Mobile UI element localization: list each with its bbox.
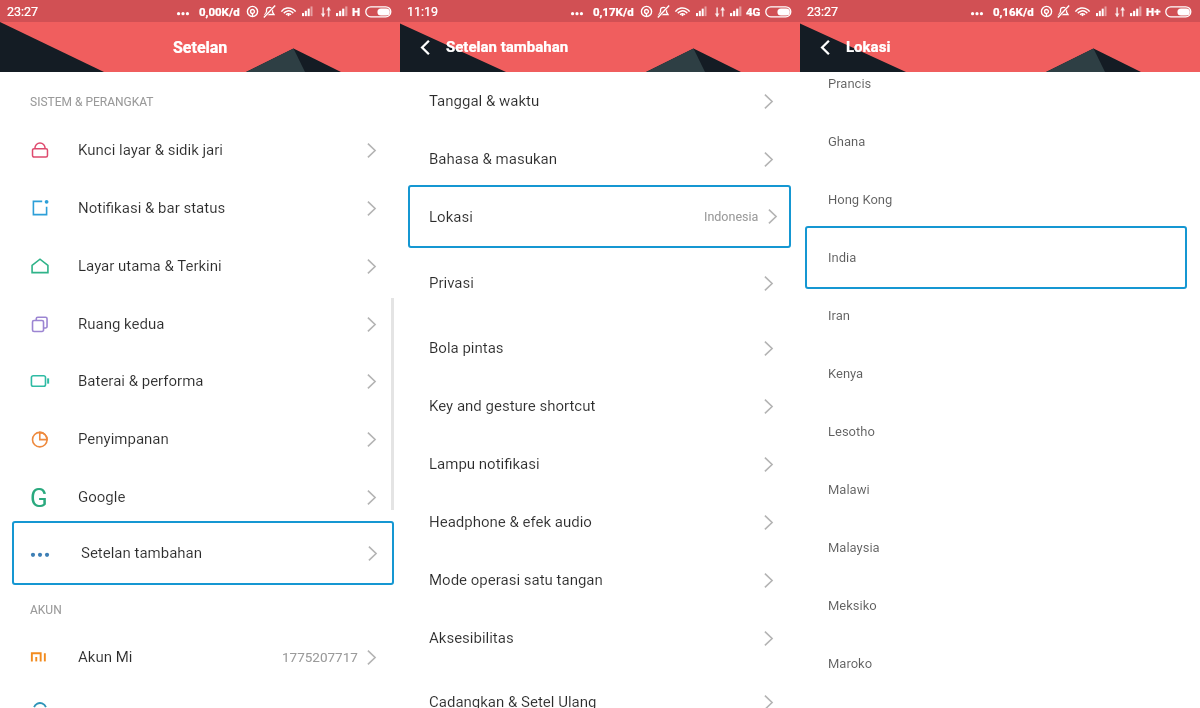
button[interactable]: Ruang kedua bbox=[0, 295, 400, 353]
staticText: Setelan tambahan bbox=[446, 38, 569, 56]
button[interactable]: Baterai & performa bbox=[0, 352, 400, 410]
staticText: 23:27 bbox=[7, 4, 39, 19]
staticText: Aksesibilitas bbox=[429, 629, 514, 647]
button[interactable]: India bbox=[805, 226, 1187, 289]
button[interactable]: Lokasi bbox=[408, 185, 791, 248]
button[interactable]: Kenya bbox=[800, 344, 1200, 402]
staticText: Key and gesture shortcut bbox=[429, 397, 596, 415]
button[interactable]: Prancis bbox=[800, 54, 1200, 112]
button[interactable]: Bola pintas bbox=[400, 319, 800, 377]
button[interactable]: Privasi bbox=[400, 254, 800, 312]
staticText: India bbox=[828, 250, 857, 265]
button[interactable]: Aksesibilitas bbox=[400, 609, 800, 667]
button[interactable]: Bahasa & masukan bbox=[400, 130, 800, 188]
staticText: 0,00K/d bbox=[199, 5, 240, 18]
staticText: Lokasi bbox=[846, 38, 891, 56]
staticText: Meksiko bbox=[828, 598, 877, 613]
button[interactable]: Layar utama & Terkini bbox=[0, 237, 400, 295]
button[interactable]: Kunci layar & sidik jari bbox=[0, 121, 400, 179]
staticText: Privasi bbox=[429, 274, 474, 292]
staticText: H+ bbox=[1146, 5, 1161, 18]
staticText: Kenya bbox=[828, 366, 864, 381]
staticText: Tanggal & waktu bbox=[429, 92, 540, 110]
button[interactable]: Maroko bbox=[800, 634, 1200, 692]
button[interactable]: Hong Kong bbox=[800, 170, 1200, 228]
button[interactable]: Mode operasi satu tangan bbox=[400, 551, 800, 609]
staticText: 23:27 bbox=[807, 4, 839, 19]
staticText: Prancis bbox=[828, 76, 872, 91]
staticText: 0,17K/d bbox=[593, 5, 634, 18]
button[interactable]: Headphone & efek audio bbox=[400, 493, 800, 551]
staticText: Baterai & performa bbox=[78, 372, 204, 390]
staticText: Hong Kong bbox=[828, 192, 893, 207]
button[interactable]: Notifikasi & bar status bbox=[0, 179, 400, 237]
staticText: 11:19 bbox=[407, 4, 439, 19]
staticText: Indonesia bbox=[704, 209, 759, 224]
staticText: Headphone & efek audio bbox=[429, 513, 592, 531]
staticText: Malaysia bbox=[828, 540, 880, 555]
staticText: Lokasi bbox=[429, 208, 473, 226]
staticText: Iran bbox=[828, 308, 850, 323]
staticText: Ghana bbox=[828, 134, 866, 149]
button[interactable]: Back bbox=[408, 30, 442, 64]
button[interactable]: Cadangkan & Setel Ulang bbox=[400, 673, 800, 708]
staticText: Penyimpanan bbox=[78, 430, 169, 448]
button[interactable]: Lesotho bbox=[800, 402, 1200, 460]
button[interactable]: Akun Mi bbox=[0, 628, 400, 686]
button[interactable]: Ghana bbox=[800, 112, 1200, 170]
staticText: Bahasa & masukan bbox=[429, 150, 557, 168]
button[interactable]: Google bbox=[0, 468, 400, 526]
staticText: Mode operasi satu tangan bbox=[429, 571, 603, 589]
staticText: 4G bbox=[746, 5, 761, 18]
staticText: Setelan bbox=[173, 38, 228, 57]
staticText: Notifikasi & bar status bbox=[78, 199, 226, 217]
staticText: Bola pintas bbox=[429, 339, 504, 357]
staticText: Cadangkan & Setel Ulang bbox=[429, 693, 597, 708]
staticText: Ruang kedua bbox=[78, 315, 165, 333]
staticText: Kunci layar & sidik jari bbox=[78, 141, 224, 159]
staticText: H bbox=[352, 5, 361, 18]
button[interactable]: Penyimpanan bbox=[0, 410, 400, 468]
staticText: Google bbox=[78, 488, 126, 506]
staticText: Malawi bbox=[828, 482, 870, 497]
staticText: G bbox=[30, 483, 48, 513]
button[interactable]: Iran bbox=[800, 286, 1200, 344]
staticText: Lesotho bbox=[828, 424, 875, 439]
button[interactable]: Key and gesture shortcut bbox=[400, 377, 800, 435]
staticText: SISTEM & PERANGKAT bbox=[30, 95, 154, 109]
button[interactable]: Setelan tambahan bbox=[12, 521, 394, 585]
staticText: Maroko bbox=[828, 656, 873, 671]
staticText: Lampu notifikasi bbox=[429, 455, 540, 473]
button[interactable]: Malaysia bbox=[800, 518, 1200, 576]
staticText: 0,16K/d bbox=[993, 5, 1034, 18]
staticText: AKUN bbox=[30, 603, 62, 617]
button[interactable]: Back bbox=[808, 30, 842, 64]
button[interactable]: Malawi bbox=[800, 460, 1200, 518]
staticText: Layar utama & Terkini bbox=[78, 257, 222, 275]
staticText: Setelan tambahan bbox=[81, 544, 203, 562]
staticText: 1775207717 bbox=[282, 649, 358, 665]
button[interactable]: Tanggal & waktu bbox=[400, 72, 800, 130]
staticText: Akun Mi bbox=[78, 648, 133, 666]
button[interactable]: Meksiko bbox=[800, 576, 1200, 634]
button[interactable]: Lampu notifikasi bbox=[400, 435, 800, 493]
